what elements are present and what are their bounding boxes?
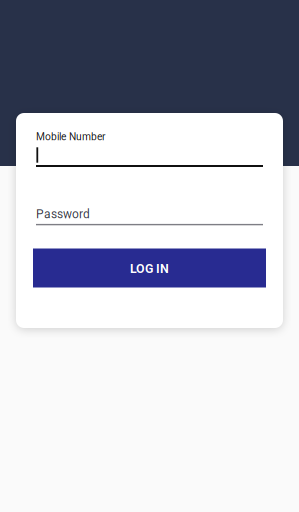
staticText: LOG IN [130, 261, 169, 276]
staticText: Password [36, 207, 90, 221]
button[interactable]: Mobile Number [36, 129, 263, 167]
staticText: Mobile Number [36, 131, 105, 143]
button[interactable]: Password [36, 206, 263, 233]
button[interactable]: LOG IN [33, 248, 266, 287]
